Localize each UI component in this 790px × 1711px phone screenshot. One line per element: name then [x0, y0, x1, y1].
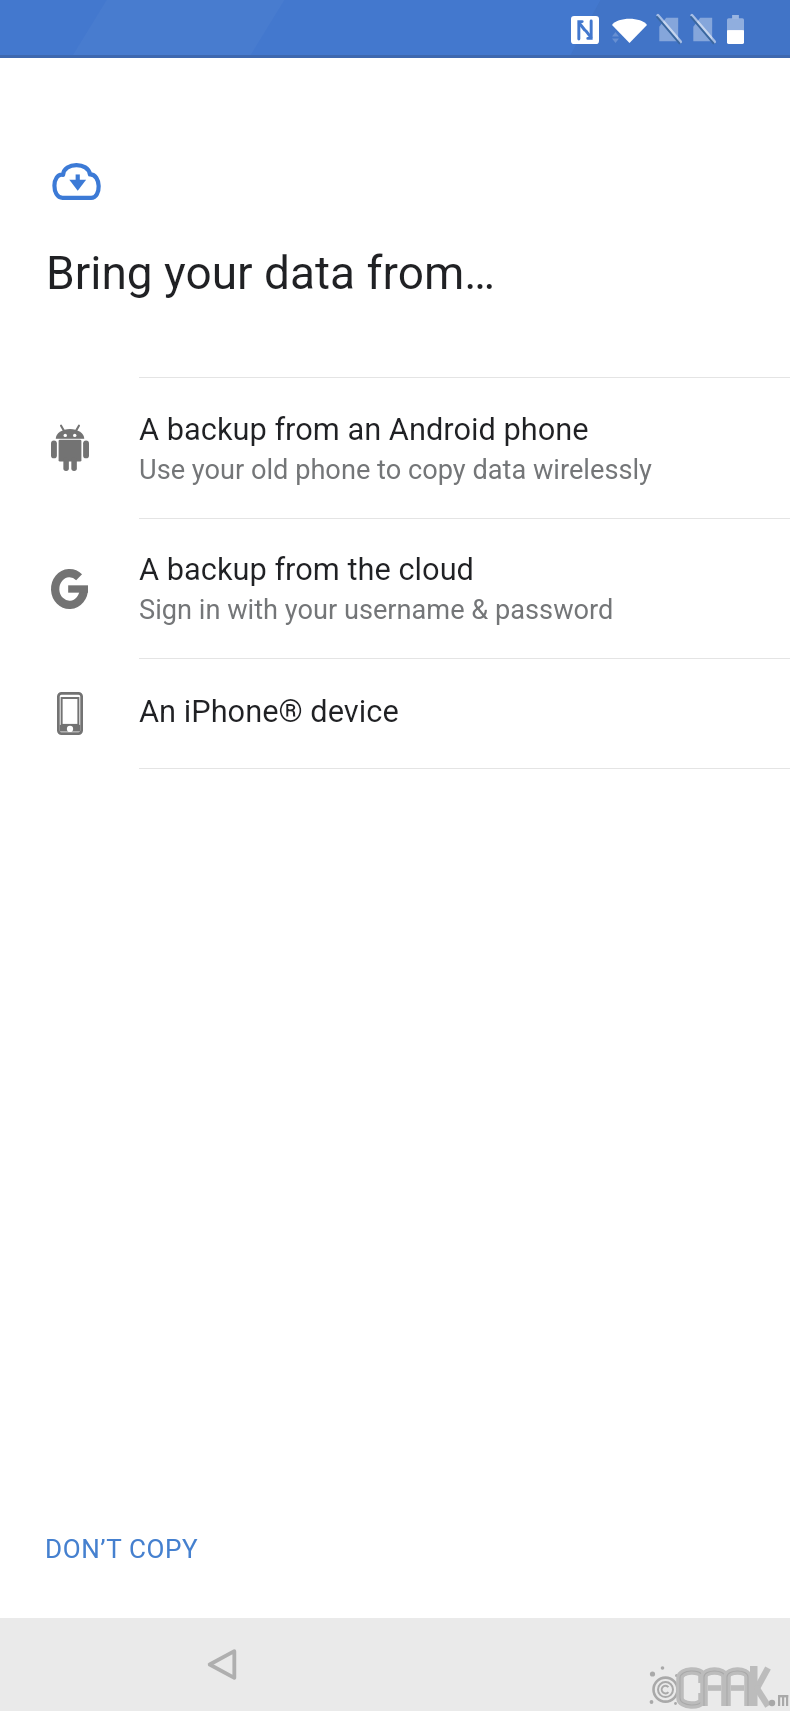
staticText: An iPhone® device [139, 693, 399, 729]
staticText: A backup from an Android phone [139, 411, 589, 447]
staticText: Use your old phone to copy data wireless… [139, 454, 652, 486]
staticText: Sign in with your username & password [139, 594, 614, 626]
staticText: Bring your data from… [46, 246, 496, 300]
button[interactable]: Back [178, 1620, 266, 1708]
staticText: A backup from the cloud [139, 551, 474, 587]
button[interactable]: A backup from the cloud [0, 519, 790, 658]
button[interactable]: A backup from an Android phone [0, 378, 790, 518]
staticText: DON’T COPY [45, 1534, 199, 1564]
button[interactable]: An iPhone® device [0, 659, 790, 768]
button[interactable]: DON’T COPY [29, 1523, 215, 1575]
